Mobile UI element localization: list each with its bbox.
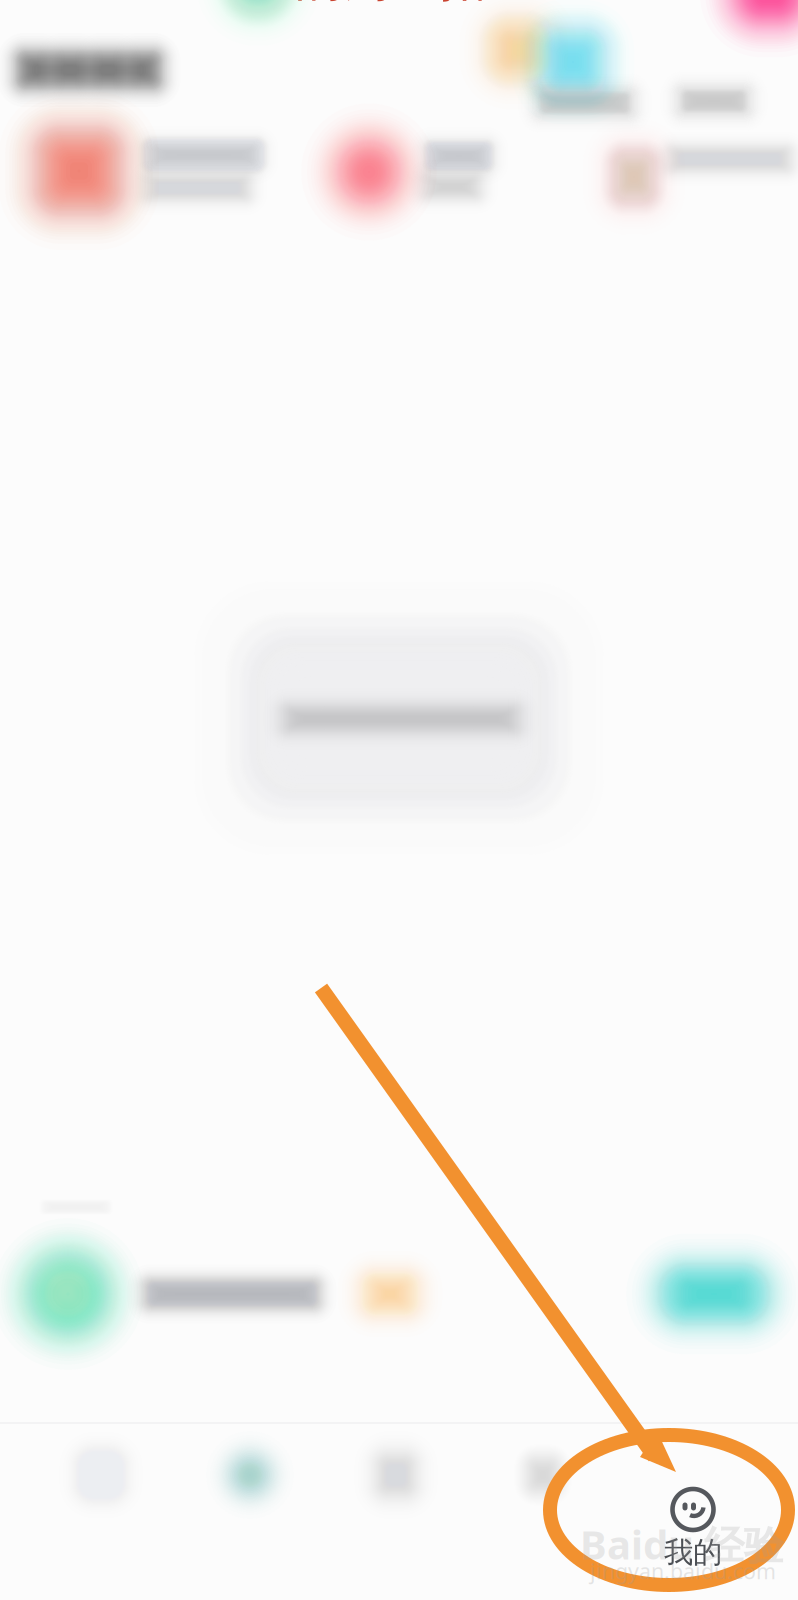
staticText: 我的 (664, 1534, 722, 1570)
button[interactable] (26, 1417, 176, 1593)
staticText: Baidu 经验 (580, 1517, 784, 1571)
button[interactable] (175, 1417, 325, 1593)
staticText: jingyan.baidu.com (590, 1557, 776, 1585)
staticText: 的为上拓 (295, 0, 487, 8)
button[interactable]: 我的 (618, 1472, 768, 1584)
button[interactable] (321, 1417, 471, 1593)
button[interactable] (468, 1417, 618, 1593)
